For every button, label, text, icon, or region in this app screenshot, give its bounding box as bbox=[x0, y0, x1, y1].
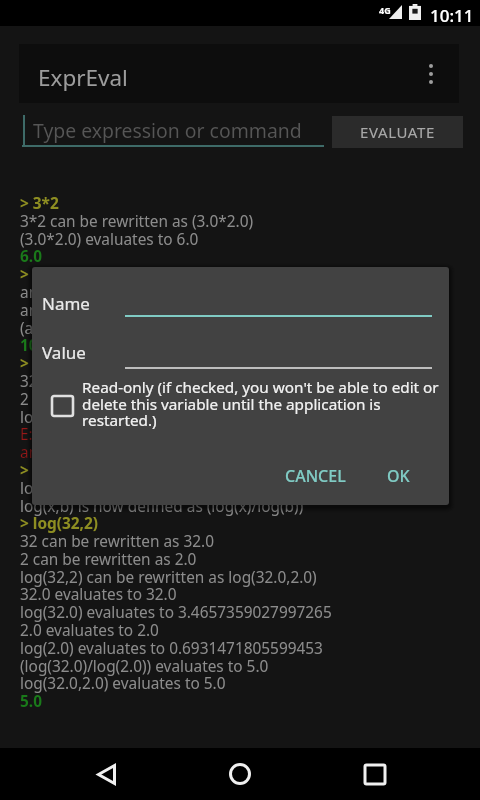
staticText: Read-only (if checked, you won't be able… bbox=[82, 377, 448, 430]
button[interactable]: OK bbox=[372, 455, 424, 497]
staticText: 10:11 bbox=[430, 4, 474, 27]
staticText: > log(32,2) bbox=[20, 513, 98, 534]
staticText: OK bbox=[387, 465, 410, 487]
staticText: Value bbox=[42, 341, 86, 364]
staticText: (log(32.0)/log(2.0)) evaluates to 5.0 bbox=[20, 656, 269, 677]
staticText: 10.0 bbox=[20, 335, 51, 356]
staticText: log(32.0,2.0) evaluates to 5.0 bbox=[20, 673, 226, 694]
staticText: CANCEL bbox=[285, 465, 346, 487]
staticText: log(32,2) can be rewritten as log(32.0,2… bbox=[20, 567, 317, 588]
staticText: and(1,0) can be rewritten as and(1.0,0.0… bbox=[20, 282, 309, 303]
staticText: 32 can be rewritten as 32.0 bbox=[20, 531, 214, 552]
staticText: and cannot be evaluated bbox=[20, 442, 199, 463]
staticText: 2 can be rewritten as 2.0 bbox=[20, 549, 197, 570]
staticText: 32 can be rewritten as 32.0 bbox=[20, 371, 214, 392]
button[interactable]: Home bbox=[214, 748, 266, 800]
staticText: 2.0 evaluates to 2.0 bbox=[20, 620, 159, 641]
staticText: log(x,b) is now defined as (log(x)/log(b… bbox=[20, 496, 304, 517]
button[interactable]: Recent apps bbox=[349, 748, 401, 800]
button[interactable]: Back bbox=[80, 748, 132, 800]
staticText: (and(1.0,0.0)) evaluates to 10.0 bbox=[20, 318, 240, 339]
staticText: log is now being defined bbox=[20, 478, 197, 499]
staticText: 2 can be rewritten as 2.0 bbox=[20, 389, 197, 410]
staticText: Name bbox=[42, 292, 90, 315]
button[interactable]: More options bbox=[409, 52, 453, 96]
staticText: (3.0*2.0) evaluates to 6.0 bbox=[20, 229, 199, 250]
staticText: Type expression or command bbox=[33, 117, 302, 143]
staticText: > def log(x,b) bbox=[20, 460, 120, 481]
button[interactable]: Read-only (if checked, you won't be able… bbox=[42, 371, 442, 427]
button[interactable]: EVALUATE bbox=[332, 116, 463, 148]
staticText: log(2.0) evaluates to 0.6931471805599453 bbox=[20, 638, 323, 659]
staticText: 6.0 bbox=[20, 246, 42, 267]
staticText: log(32.0) evaluates to 3.465735902799726… bbox=[20, 602, 332, 623]
button[interactable]: CANCEL bbox=[275, 455, 355, 497]
staticText: 5.0 bbox=[20, 691, 42, 712]
staticText: and(1.0,0.0) evaluates to 10.0 bbox=[20, 300, 231, 321]
staticText: 32.0 evaluates to 32.0 bbox=[20, 584, 177, 605]
staticText: EVALUATE bbox=[360, 122, 435, 142]
staticText: > and(1,0) bbox=[20, 264, 95, 285]
button[interactable]: Type expression or command bbox=[22, 112, 324, 147]
staticText: > 32/2 bbox=[20, 353, 66, 374]
staticText: > 3*2 bbox=[20, 193, 59, 214]
staticText: E: undefined function bbox=[20, 424, 175, 445]
staticText: 3*2 can be rewritten as (3.0*2.0) bbox=[20, 211, 254, 232]
staticText: log(32,2) can be rewritten bbox=[20, 407, 205, 428]
staticText: ExprEval bbox=[38, 62, 128, 93]
staticText: 4G bbox=[379, 4, 391, 16]
